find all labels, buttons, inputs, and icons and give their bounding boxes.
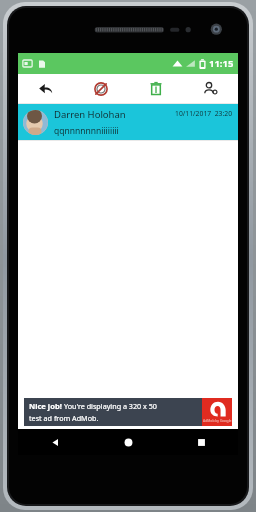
- staticText: test ad from AdMob.: [29, 413, 99, 423]
- button[interactable]: Recent apps: [165, 429, 238, 455]
- staticText: Darren Holohan: [54, 108, 126, 121]
- button[interactable]: Block: [73, 74, 128, 103]
- staticText: AdMob by Google: [203, 418, 232, 423]
- staticText: You're displaying a 320 x 50: [64, 401, 157, 411]
- button[interactable]: Back: [18, 429, 92, 455]
- staticText: qqnnnnnnniiiiiiii: [54, 125, 119, 137]
- button[interactable]: Home: [92, 429, 165, 455]
- button[interactable]: Add contact: [183, 74, 238, 103]
- button[interactable]: Nice job!: [24, 398, 232, 426]
- staticText: 11:15: [209, 57, 234, 70]
- button[interactable]: Darren Holohan: [18, 104, 238, 140]
- staticText: 10/11/2017 23:20: [175, 109, 233, 118]
- button[interactable]: Back: [18, 74, 73, 103]
- staticText: Nice job!: [29, 401, 62, 411]
- button[interactable]: Delete: [128, 74, 183, 103]
